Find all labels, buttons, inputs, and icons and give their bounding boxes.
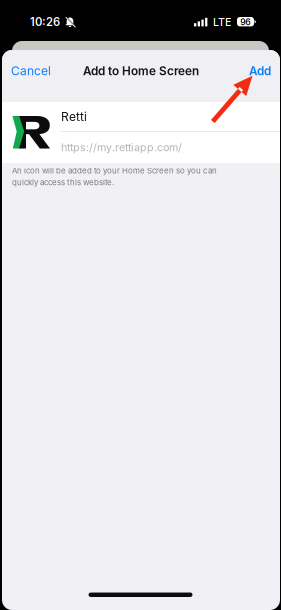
- staticText: 10:26: [30, 15, 60, 29]
- staticText: Add: [249, 64, 271, 78]
- staticText: LTE: [213, 15, 231, 28]
- button[interactable]: Cancel: [2, 57, 60, 95]
- staticText: An icon will be added to your Home Scree…: [12, 166, 217, 187]
- staticText: https://my.rettiapp.com/: [61, 141, 182, 154]
- staticText: 96: [240, 17, 250, 27]
- button[interactable]: Add: [240, 57, 280, 95]
- staticText: Cancel: [11, 64, 51, 78]
- staticText: Add to Home Screen: [83, 64, 199, 78]
- staticText: Retti: [61, 109, 87, 124]
